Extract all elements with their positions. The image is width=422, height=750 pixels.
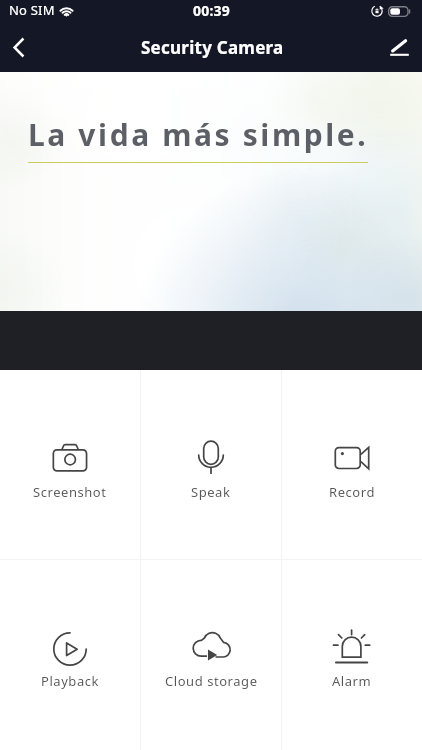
staticText: Speak — [191, 483, 231, 501]
staticText: Cloud storage — [165, 672, 258, 690]
staticText: Alarm — [332, 672, 372, 690]
staticText: Screenshot — [33, 483, 107, 501]
staticText: Record — [329, 483, 375, 501]
button[interactable]: Cloud storage — [141, 560, 281, 750]
button[interactable]: Back — [0, 28, 38, 72]
staticText: 00:39 — [193, 1, 230, 20]
staticText: La vida más simple. — [28, 114, 369, 155]
staticText: No SIM — [9, 1, 55, 19]
button[interactable]: Alarm — [282, 560, 422, 750]
button[interactable]: Screenshot — [0, 370, 140, 559]
button[interactable]: Playback — [0, 560, 140, 750]
button[interactable]: Speak — [141, 370, 281, 559]
staticText: Playback — [41, 672, 100, 690]
staticText: Security Camera — [141, 36, 284, 59]
button[interactable]: Edit — [378, 28, 422, 72]
button[interactable]: Record — [282, 370, 422, 559]
